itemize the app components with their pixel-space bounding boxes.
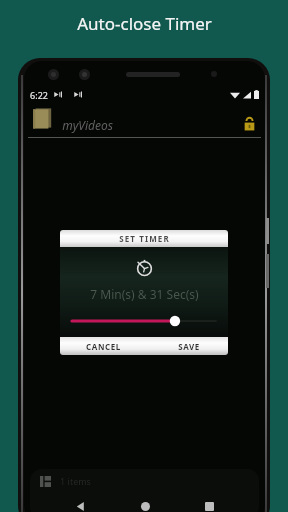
staticText: myVideos (62, 117, 113, 133)
staticText: Auto-close Timer (77, 12, 212, 35)
button[interactable]: Locked folder (244, 117, 255, 131)
staticText: SET TIMER (119, 233, 170, 244)
button[interactable]: SAVE (178, 341, 200, 352)
button[interactable]: CANCEL (86, 341, 121, 352)
staticText: 1 items (60, 475, 91, 487)
staticText: CANCEL (86, 341, 121, 352)
button[interactable]: Home (130, 493, 160, 512)
staticText: 7 Min(s) & 31 Sec(s) (90, 286, 199, 302)
button[interactable]: SET TIMER (60, 230, 228, 247)
button[interactable] (72, 312, 216, 330)
button[interactable]: Back (65, 493, 95, 512)
staticText: 6:22 (30, 89, 48, 101)
staticText: SAVE (178, 341, 200, 352)
button[interactable]: Recent apps (194, 493, 224, 512)
